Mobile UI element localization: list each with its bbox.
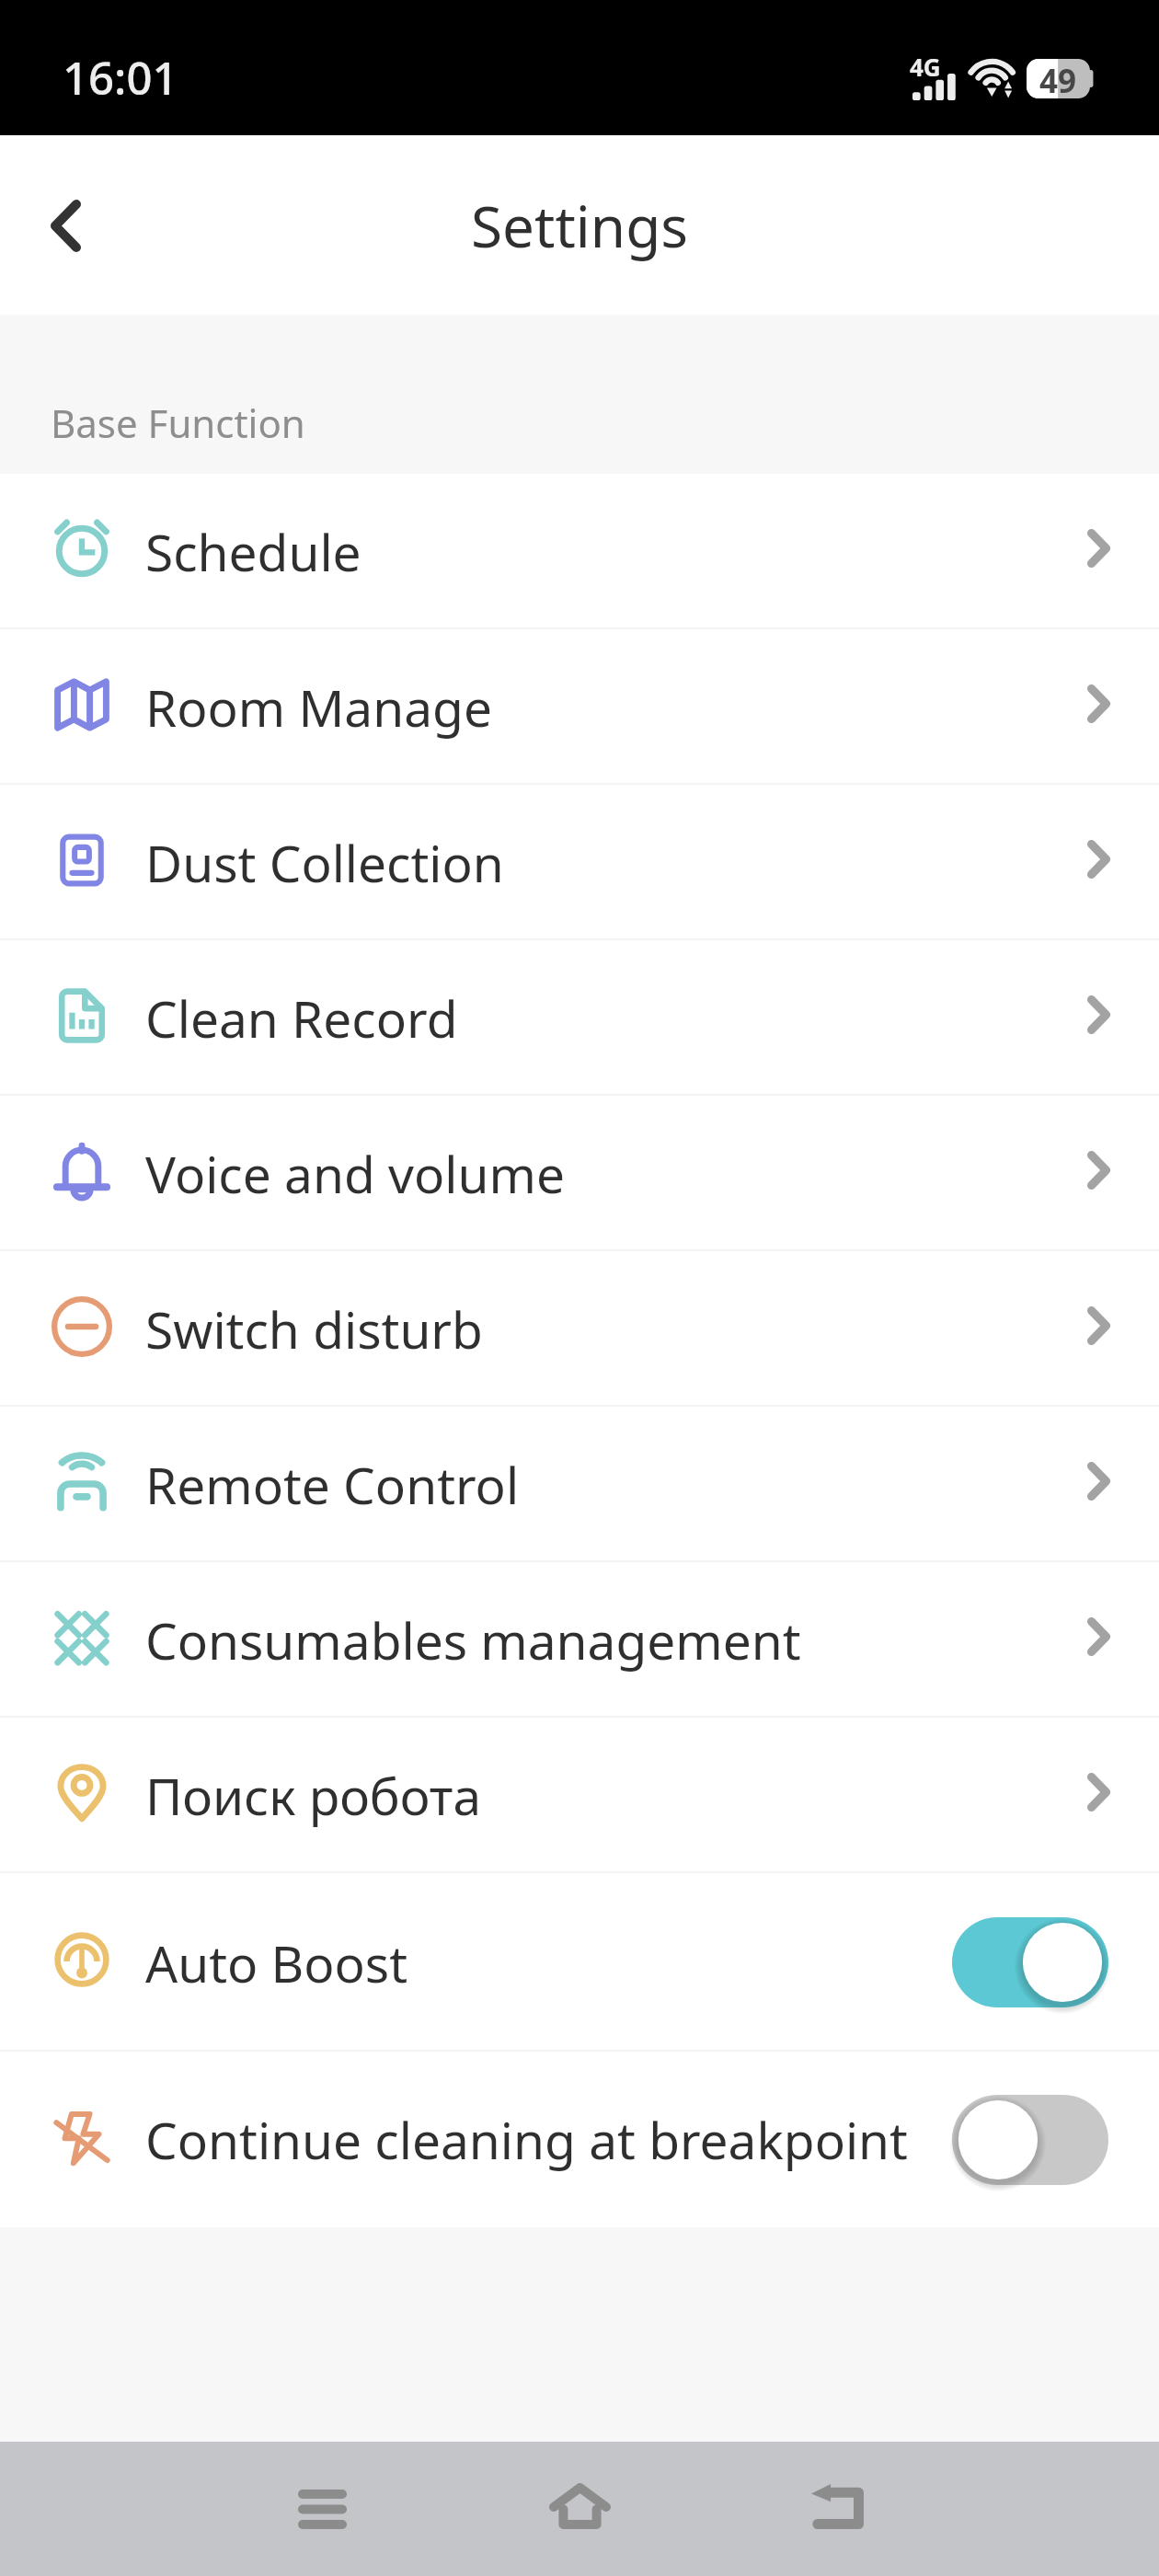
button[interactable]: Consumables management bbox=[0, 1562, 1159, 1718]
staticText: 16:01 bbox=[63, 47, 178, 109]
button[interactable]: Schedule bbox=[0, 474, 1159, 629]
staticText: Switch disturb bbox=[145, 1294, 1085, 1363]
staticText: Dust Collection bbox=[145, 828, 1085, 897]
button[interactable]: Auto Boost bbox=[0, 1873, 1159, 2052]
button[interactable]: Voice and volume bbox=[0, 1096, 1159, 1251]
staticText: 49 bbox=[1039, 59, 1077, 98]
staticText: Auto Boost bbox=[145, 1928, 952, 1997]
staticText: Voice and volume bbox=[145, 1139, 1085, 1208]
button[interactable]: Поиск робота bbox=[0, 1718, 1159, 1873]
staticText: Settings bbox=[471, 187, 688, 264]
staticText: Room Manage bbox=[145, 673, 1085, 742]
staticText: Consumables management bbox=[145, 1605, 1085, 1674]
button[interactable] bbox=[952, 1917, 1108, 2007]
button[interactable]: Back bbox=[11, 171, 120, 280]
button[interactable]: Clean Record bbox=[0, 940, 1159, 1096]
button[interactable]: Remote Control bbox=[0, 1407, 1159, 1562]
staticText: Base Function bbox=[51, 397, 305, 449]
staticText: Continue cleaning at breakpoint bbox=[145, 2105, 952, 2174]
staticText: Remote Control bbox=[145, 1450, 1085, 1519]
staticText: Поиск робота bbox=[145, 1761, 1085, 1830]
staticText: 4G bbox=[910, 51, 941, 83]
button[interactable]: Continue cleaning at breakpoint bbox=[0, 2052, 1159, 2227]
button[interactable]: Switch disturb bbox=[0, 1251, 1159, 1407]
staticText: Schedule bbox=[145, 517, 1085, 586]
button[interactable] bbox=[952, 2095, 1108, 2185]
button[interactable]: Home bbox=[515, 2444, 644, 2573]
button[interactable]: Back bbox=[773, 2444, 901, 2573]
button[interactable]: Dust Collection bbox=[0, 785, 1159, 940]
button[interactable]: Room Manage bbox=[0, 629, 1159, 785]
staticText: Clean Record bbox=[145, 983, 1085, 1052]
button[interactable]: Recent apps bbox=[258, 2444, 386, 2573]
